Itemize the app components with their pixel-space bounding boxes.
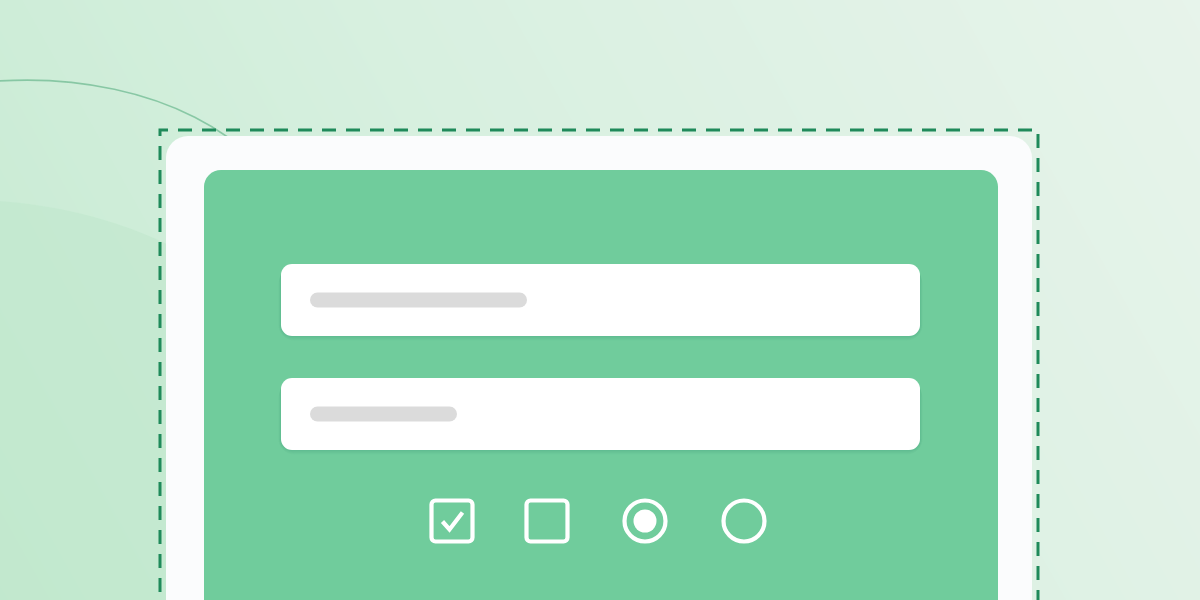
button[interactable]: Form preview frame <box>0 0 1200 600</box>
